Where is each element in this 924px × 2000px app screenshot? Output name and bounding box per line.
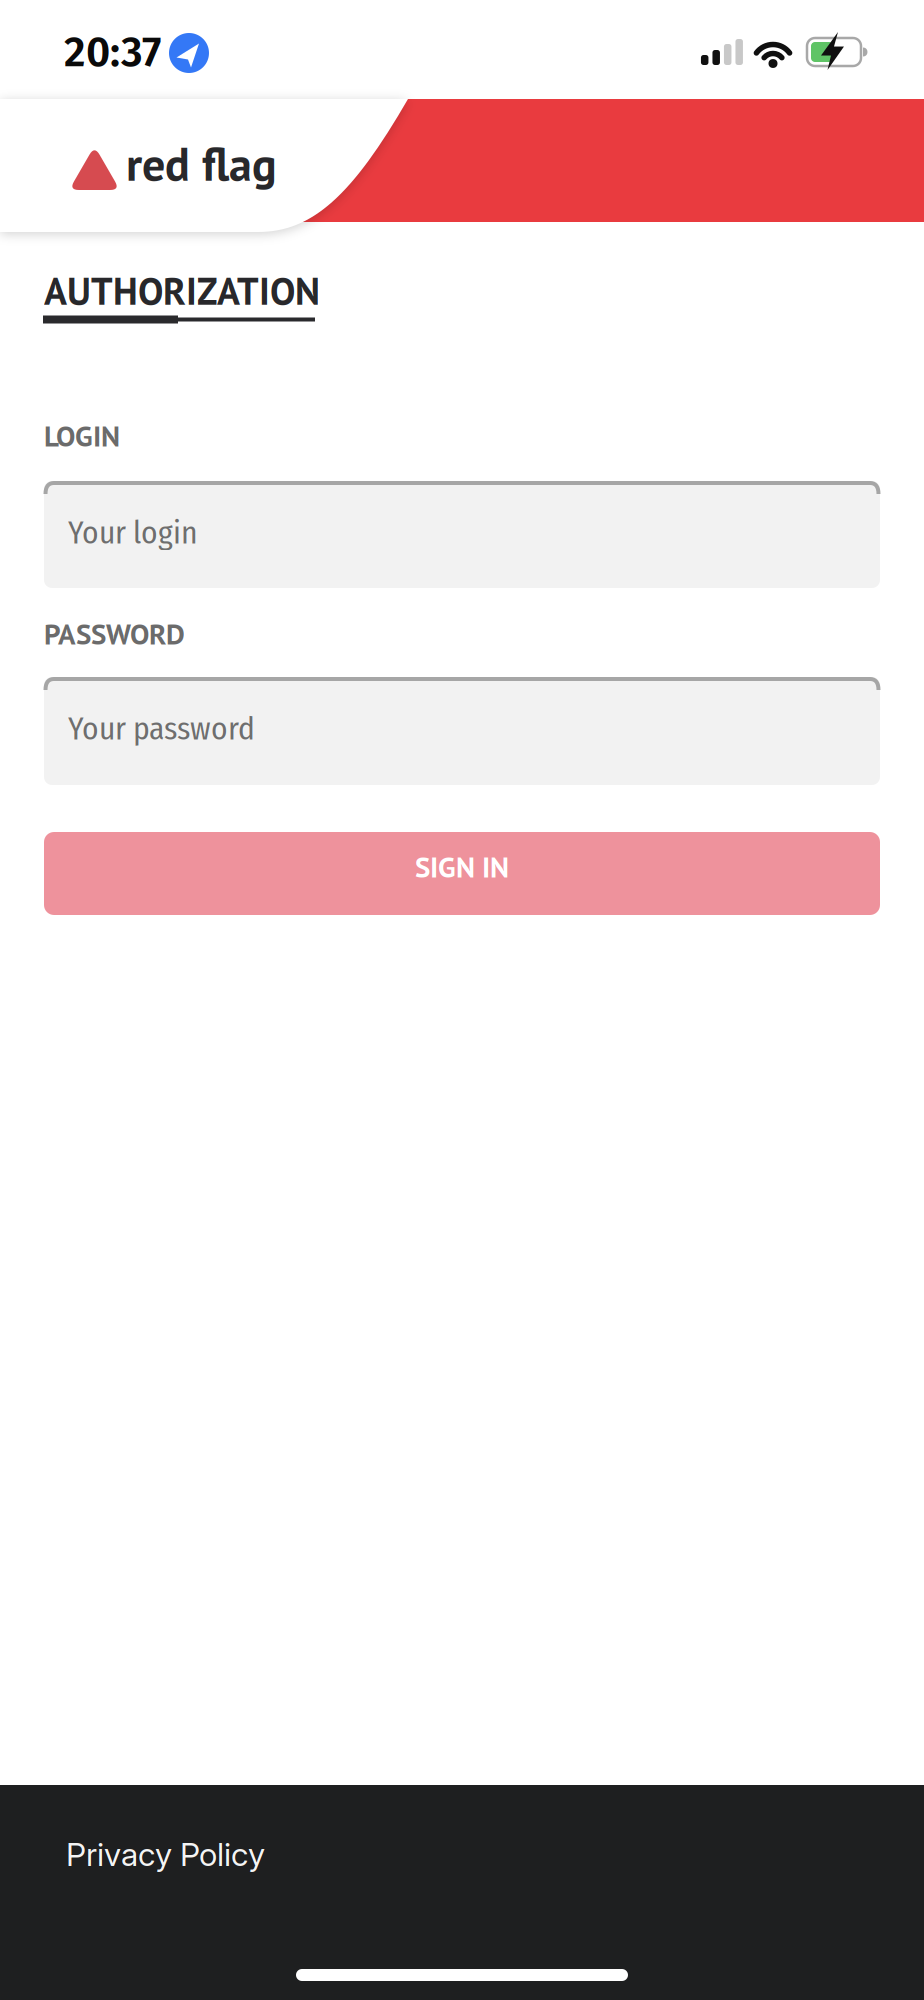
button[interactable]: Privacy Policy (66, 1835, 265, 1874)
staticText: Your password (68, 710, 255, 748)
staticText: SIGN IN (415, 848, 509, 885)
staticText: Privacy Policy (66, 1835, 265, 1874)
button[interactable]: SIGN IN (44, 832, 880, 915)
staticText: red flag (126, 134, 277, 193)
button[interactable]: Your login (44, 481, 880, 588)
staticText: LOGIN (44, 417, 120, 454)
staticText: AUTHORIZATION (44, 266, 320, 315)
staticText: 20:37 (64, 27, 161, 77)
staticText: Your login (68, 514, 198, 552)
staticText: PASSWORD (44, 615, 185, 652)
button[interactable]: Your password (44, 677, 880, 785)
